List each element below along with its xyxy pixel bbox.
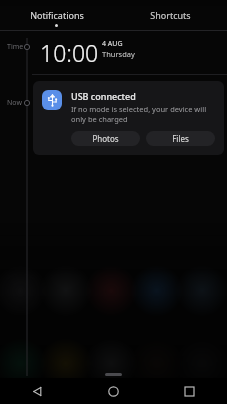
staticText: 10:00	[40, 37, 99, 68]
staticText: Thursday	[102, 49, 135, 59]
staticText: Photos	[92, 133, 119, 144]
button[interactable]: Shortcuts	[113, 0, 227, 30]
staticText: Shortcuts	[150, 9, 191, 21]
staticText: Files	[172, 133, 189, 144]
staticText: Notifications	[30, 9, 84, 21]
other: USB connected	[42, 90, 62, 110]
button[interactable]: Recents	[151, 378, 227, 404]
staticText: If no mode is selected, your device will…	[71, 104, 215, 124]
button[interactable]: Home	[75, 378, 151, 404]
button[interactable]: USB connected	[33, 81, 224, 155]
staticText: Now	[7, 98, 22, 108]
staticText: 4 AUG	[102, 39, 123, 49]
button[interactable]: Photos	[71, 131, 140, 146]
button[interactable]: Back	[0, 378, 75, 404]
staticText: USB connected	[71, 90, 136, 102]
staticText: Time	[7, 42, 24, 52]
button[interactable]: Notifications	[0, 0, 113, 30]
button[interactable]: Files	[146, 131, 215, 146]
